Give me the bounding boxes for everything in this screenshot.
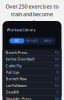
staticText: Barbell Row [5, 76, 26, 81]
staticText: Workout Library [6, 27, 35, 32]
staticText: Over 250 exercises to [5, 3, 58, 10]
staticText: Lat Pulldown [5, 83, 26, 88]
staticText: Pull Ups [5, 70, 19, 75]
staticText: 15 [54, 63, 58, 68]
staticText: Shoulder Press [5, 96, 31, 100]
button[interactable]: Cardio [39, 38, 54, 43]
button[interactable]: Deadlift [2, 89, 61, 95]
staticText: Strength [26, 39, 38, 42]
button[interactable]: Cable Fly [2, 62, 61, 69]
staticText: Bench Press [5, 50, 27, 55]
staticText: 12 [54, 83, 58, 88]
staticText: 5 [56, 89, 58, 95]
staticText: 10 [54, 96, 58, 100]
staticText: Cardio [42, 39, 51, 42]
button[interactable]: Barbell Row [2, 76, 61, 82]
staticText: 12 [54, 76, 58, 81]
staticText: stronger than ever. [9, 18, 54, 25]
button[interactable]: Incline Dumbbell [2, 56, 61, 62]
button[interactable]: Strength [24, 38, 39, 43]
button[interactable]: Shoulder Press [2, 95, 61, 100]
button[interactable]: All [9, 38, 24, 43]
staticText: train and become [11, 11, 53, 18]
staticText: Cable Fly [5, 63, 21, 68]
button[interactable]: Lat Pulldown [2, 82, 61, 88]
button[interactable]: Bench Press [2, 49, 61, 55]
staticText: 8 [56, 70, 58, 75]
staticText: 10 [54, 56, 58, 62]
staticText: All [15, 39, 19, 42]
staticText: Incline Dumbbell [5, 56, 34, 62]
staticText: Deadlift [5, 89, 18, 95]
staticText: 12 [54, 50, 58, 55]
button[interactable]: Pull Ups [2, 69, 61, 75]
